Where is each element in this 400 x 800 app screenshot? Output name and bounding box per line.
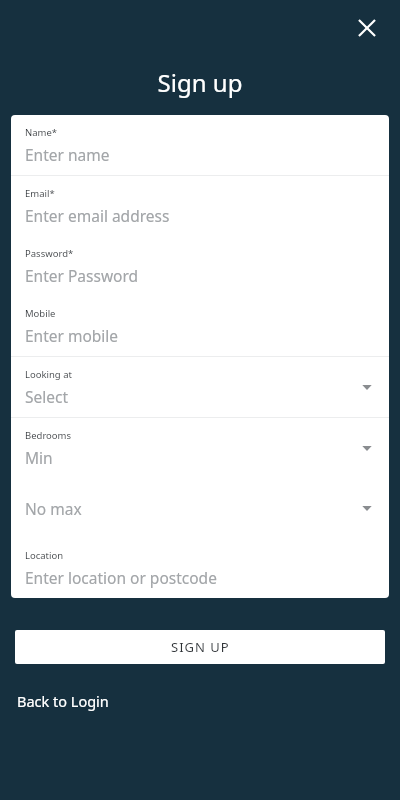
staticText: Select [25, 386, 69, 407]
staticText: Looking at [25, 368, 72, 381]
staticText: Mobile [25, 307, 56, 320]
button[interactable]: Location [11, 538, 389, 598]
button[interactable]: Password* [11, 236, 389, 296]
staticText: Enter email address [25, 205, 170, 226]
button[interactable]: Close [354, 15, 380, 41]
staticText: Enter mobile [25, 325, 119, 346]
staticText: Enter Password [25, 265, 139, 286]
other: Open dropdown [361, 442, 373, 454]
button[interactable]: Email* [11, 176, 389, 236]
button[interactable]: Back to Login [17, 691, 109, 711]
staticText: Enter location or postcode [25, 567, 217, 588]
staticText: Location [25, 549, 64, 562]
other: Open dropdown [361, 381, 373, 393]
button[interactable]: SIGN UP [15, 630, 385, 664]
button[interactable]: Name* [11, 115, 389, 176]
staticText: Sign up [0, 66, 400, 99]
button[interactable]: No max [11, 478, 389, 538]
staticText: Password* [25, 247, 74, 260]
staticText: Back to Login [17, 691, 109, 711]
staticText: Enter name [25, 144, 110, 165]
staticText: Email* [25, 187, 55, 200]
staticText: Name* [25, 126, 58, 139]
staticText: No max [25, 498, 82, 519]
other: Open dropdown [361, 502, 373, 514]
staticText: Bedrooms [25, 429, 72, 442]
staticText: Min [25, 447, 53, 468]
staticText: SIGN UP [171, 638, 230, 656]
button[interactable]: Looking at [11, 357, 389, 418]
button[interactable]: Bedrooms [11, 418, 389, 478]
button[interactable]: Mobile [11, 296, 389, 357]
